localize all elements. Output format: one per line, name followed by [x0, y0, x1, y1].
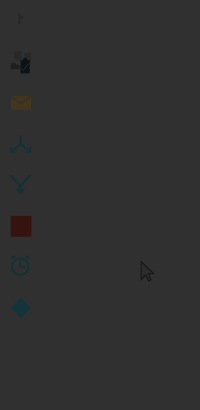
button[interactable]: Alarm [0, 246, 200, 287]
button[interactable]: Diamond [0, 287, 200, 328]
button[interactable]: Assignment turned in [0, 41, 200, 82]
button[interactable]: Stop [0, 205, 200, 246]
button[interactable]: Mail [0, 82, 200, 123]
